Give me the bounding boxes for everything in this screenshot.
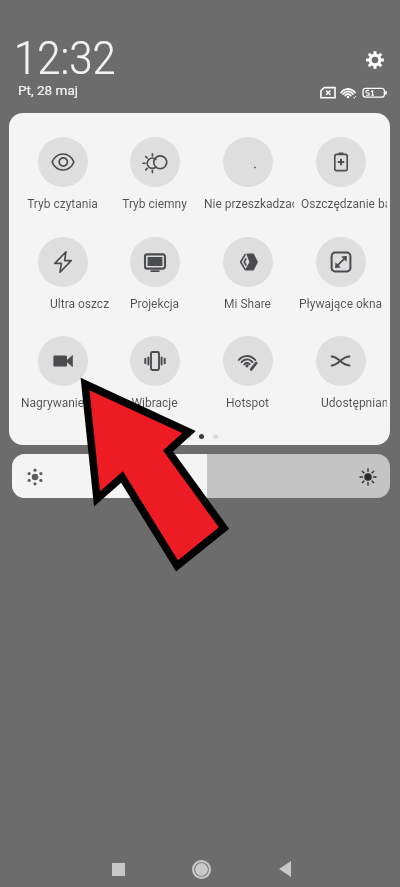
staticText: Nie przeszkadzać bbox=[204, 197, 294, 211]
staticText: 12:32 bbox=[14, 31, 116, 85]
button[interactable]: Settings bbox=[361, 46, 389, 74]
staticText: Ultra oszczędzanie bbox=[50, 297, 109, 311]
staticText: Oszczędzanie baterii bbox=[301, 197, 387, 211]
staticText: Projekcja bbox=[108, 297, 201, 311]
button[interactable]: Tryb ciemny bbox=[108, 129, 201, 213]
button[interactable]: Nie przeszkadzać bbox=[201, 129, 294, 213]
staticText: Nagrywanie ekranu bbox=[21, 396, 109, 410]
button[interactable]: Udostępnianie internetu bbox=[294, 328, 387, 412]
button[interactable]: Nagrywanie ekranu bbox=[16, 328, 109, 412]
staticText: Hotspot bbox=[201, 396, 294, 410]
staticText: Wibracje bbox=[108, 396, 201, 410]
button[interactable]: Tryb czytania bbox=[16, 129, 109, 213]
button[interactable]: Pływające okna bbox=[294, 229, 387, 313]
staticText: Tryb czytania bbox=[16, 197, 109, 211]
staticText: Udostępnianie internetu bbox=[321, 396, 387, 410]
button[interactable]: Back bbox=[257, 841, 313, 887]
button[interactable]: Recents bbox=[90, 841, 146, 887]
button[interactable]: Projekcja bbox=[108, 229, 201, 313]
button[interactable]: Hotspot bbox=[201, 328, 294, 412]
staticText: Pływające okna bbox=[294, 297, 387, 311]
button[interactable]: Mi Share bbox=[201, 229, 294, 313]
staticText: Mi Share bbox=[201, 297, 294, 311]
button[interactable]: Wibracje bbox=[108, 328, 201, 412]
staticText: Tryb ciemny bbox=[108, 197, 201, 211]
button[interactable]: Brightness bbox=[12, 454, 390, 498]
button[interactable]: Ultra oszczędzanie bbox=[16, 229, 109, 313]
staticText: Pt, 28 maj bbox=[18, 82, 78, 98]
button[interactable]: Oszczędzanie baterii bbox=[294, 129, 387, 213]
button[interactable]: Home bbox=[173, 841, 229, 887]
